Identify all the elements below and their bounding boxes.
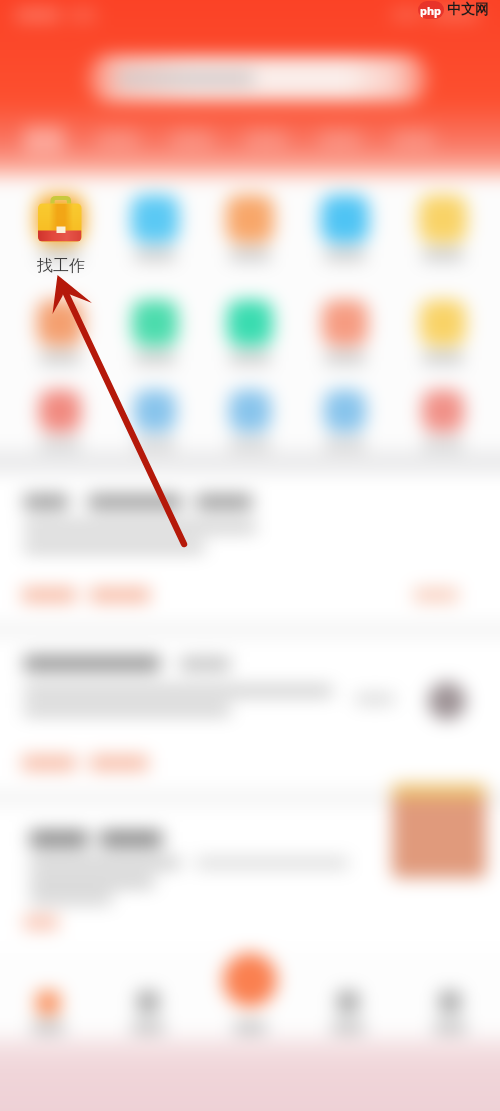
button[interactable]: App icon bbox=[324, 390, 366, 432]
button[interactable]: Publish bbox=[223, 953, 277, 1007]
button[interactable]: App icon bbox=[39, 390, 81, 432]
button[interactable]: Cart bbox=[337, 991, 359, 1013]
button[interactable]: App icon bbox=[419, 195, 467, 243]
button[interactable]: App icon bbox=[422, 390, 464, 432]
button[interactable]: Profile bbox=[439, 991, 461, 1013]
button[interactable]: Home bbox=[36, 991, 60, 1015]
button[interactable]: App icon bbox=[134, 390, 176, 432]
button[interactable]: App icon bbox=[36, 195, 84, 243]
staticText: php bbox=[420, 3, 442, 18]
button[interactable]: App icon bbox=[226, 195, 274, 243]
staticText: 中文网 bbox=[447, 1, 489, 19]
button[interactable]: Category bbox=[137, 991, 159, 1013]
button[interactable]: App icon bbox=[227, 300, 273, 346]
button[interactable]: App icon bbox=[321, 195, 369, 243]
button[interactable]: App icon bbox=[37, 300, 83, 346]
staticText: 找工作 bbox=[37, 256, 85, 276]
button[interactable]: App icon bbox=[322, 300, 368, 346]
button[interactable]: App icon bbox=[132, 300, 178, 346]
button[interactable]: App icon bbox=[229, 390, 271, 432]
button[interactable]: App icon bbox=[131, 195, 179, 243]
button[interactable]: App icon bbox=[420, 300, 466, 346]
button[interactable]: 找工作 bbox=[30, 194, 92, 276]
